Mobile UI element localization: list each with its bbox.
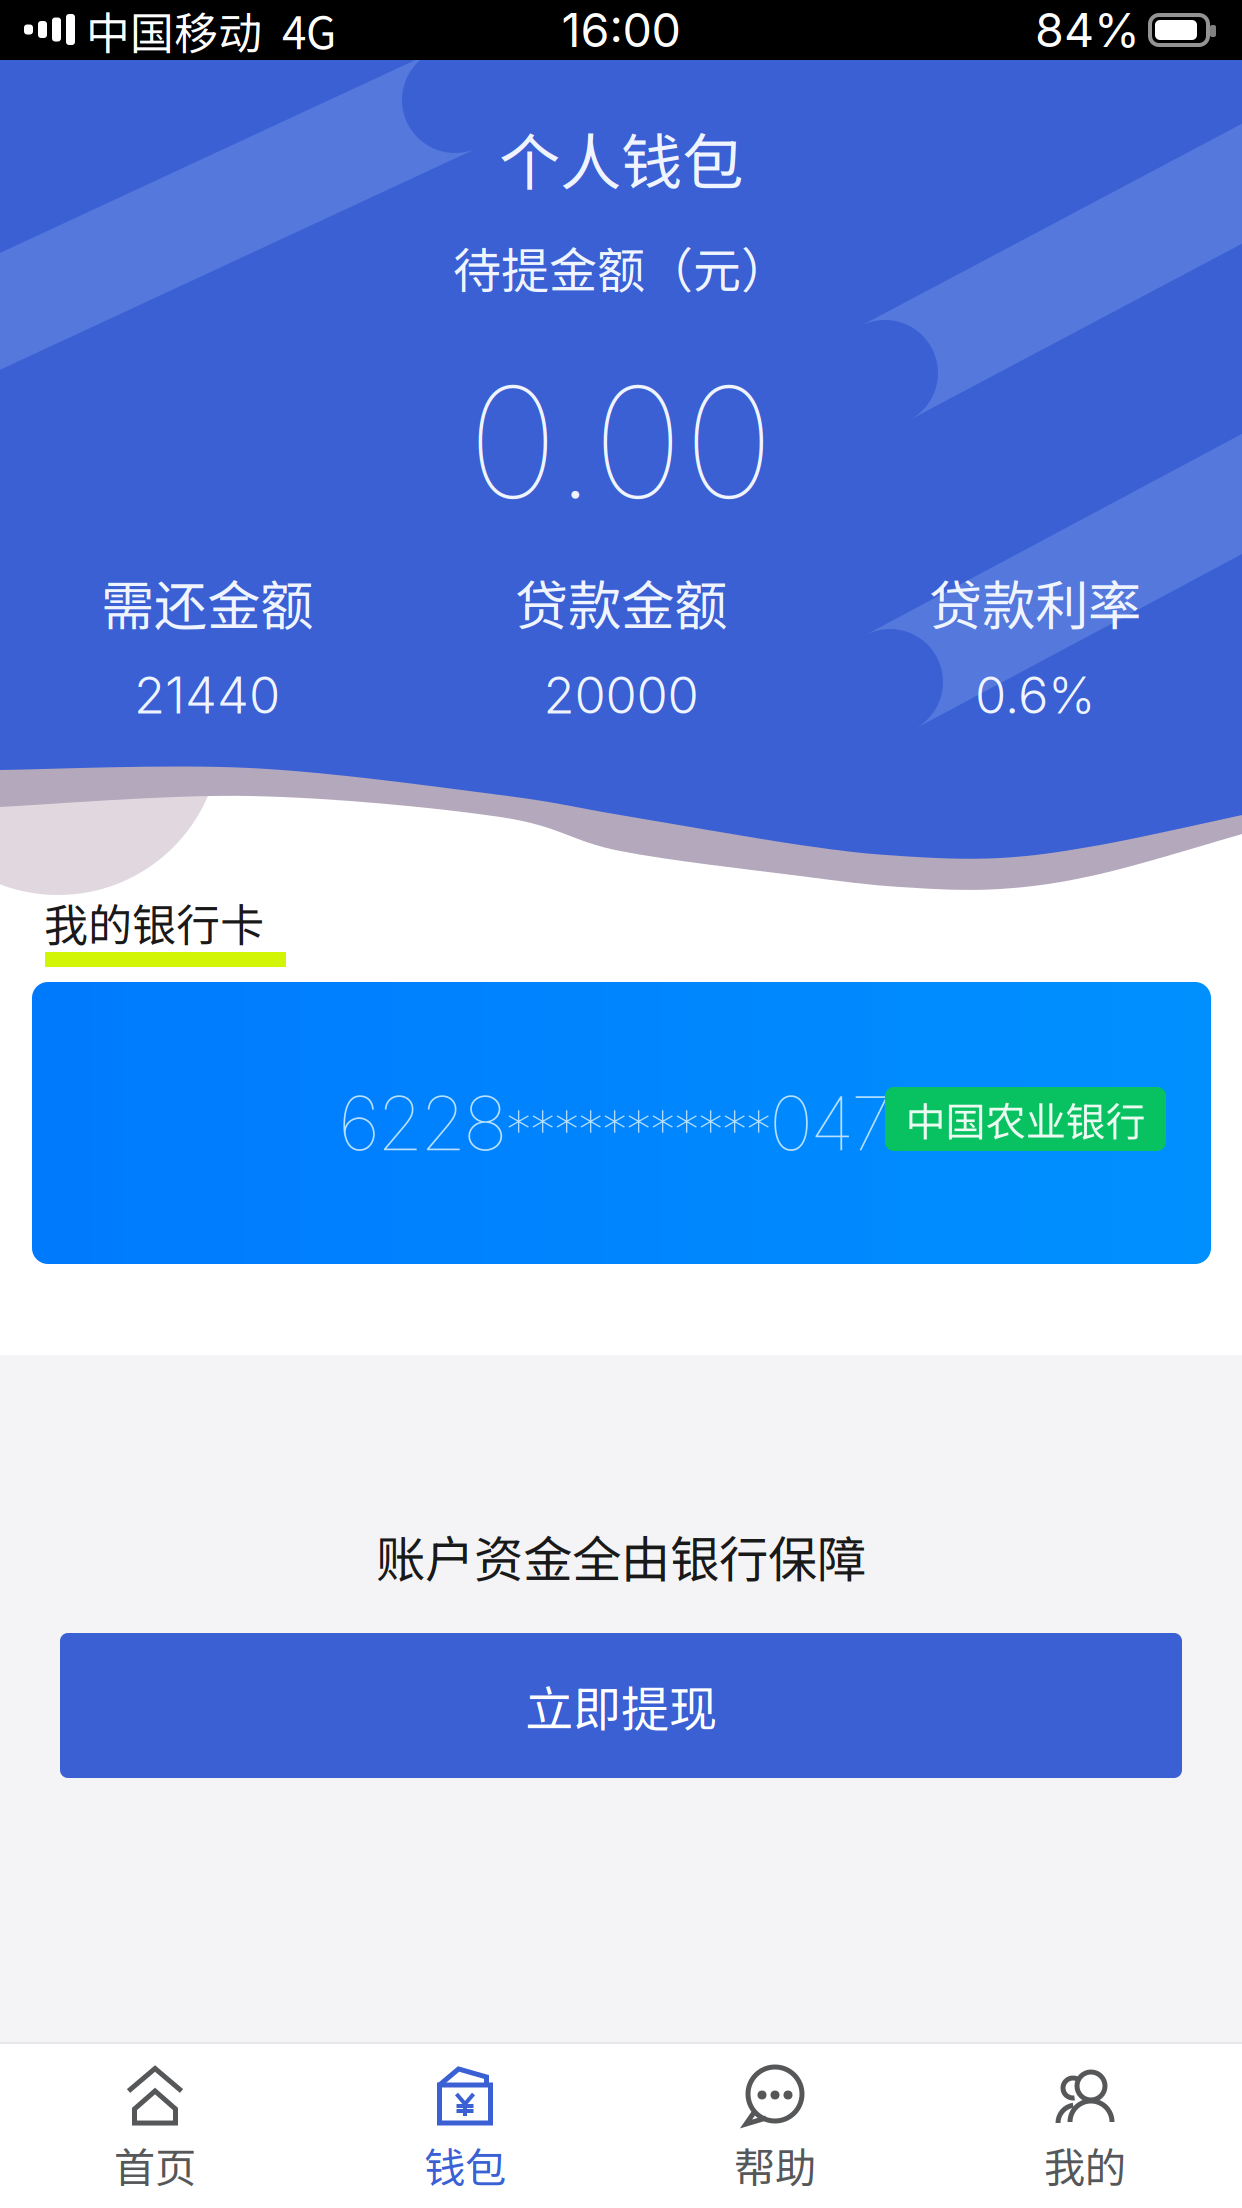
staticText: 0.00 [467, 349, 774, 535]
staticText: 我的 [1044, 2135, 1126, 2195]
staticText: 需还金额 [101, 563, 313, 641]
button[interactable]: 首页 [0, 2042, 310, 2208]
staticText: 帮助 [734, 2135, 816, 2195]
button[interactable]: 帮助 [620, 2042, 930, 2208]
staticText: 我的银行卡 [44, 890, 264, 954]
staticText: 20000 [543, 664, 698, 726]
staticText: 0.6% [975, 664, 1095, 726]
staticText: 21440 [134, 664, 280, 726]
staticText: 6228***********047 [338, 1079, 892, 1167]
staticText: 账户资金全由银行保障 [376, 1520, 866, 1592]
staticText: 个人钱包 [499, 114, 743, 202]
button[interactable]: 我的 [930, 2042, 1240, 2208]
button[interactable]: 6228***********047 [32, 982, 1211, 1264]
staticText: 中国农业银行 [905, 1090, 1145, 1148]
staticText: 贷款利率 [929, 563, 1141, 641]
staticText: 贷款金额 [515, 563, 727, 641]
staticText: 16:00 [561, 2, 680, 58]
staticText: 立即提现 [525, 1671, 717, 1740]
staticText: 中国移动 4G [86, 0, 336, 62]
button[interactable]: 立即提现 [60, 1633, 1182, 1778]
staticText: 待提金额（元） [453, 232, 789, 302]
button[interactable]: 钱包 [310, 2042, 620, 2208]
staticText: 钱包 [424, 2135, 506, 2195]
staticText: 84% [1035, 2, 1140, 58]
staticText: 首页 [114, 2135, 196, 2195]
